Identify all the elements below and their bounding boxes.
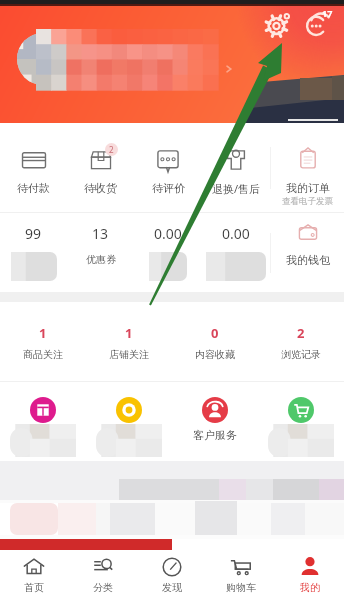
button[interactable]: 我的 [275, 550, 344, 599]
button[interactable]: 0.00 [134, 213, 202, 292]
button[interactable]: 2 [67, 123, 134, 212]
staticText: 13 [92, 224, 109, 243]
staticText: 浏览记录 [281, 348, 321, 361]
button[interactable]: 购物车 [206, 550, 275, 599]
staticText: 待付款 [17, 181, 50, 195]
staticText: 17 [322, 7, 333, 19]
button[interactable]: 0 [172, 302, 258, 381]
button[interactable]: 我的订单 [271, 123, 344, 212]
button[interactable]: 客户服务 [172, 382, 258, 457]
button[interactable] [258, 382, 344, 457]
button[interactable]: 待评价 [134, 123, 202, 212]
staticText: 首页 [24, 581, 44, 594]
staticText: 1 [39, 324, 47, 342]
button[interactable]: 1 [86, 302, 172, 381]
button[interactable]: 我的钱包 [271, 213, 344, 292]
staticText: 0.00 [154, 224, 182, 243]
staticText: 退换/售后 [212, 181, 261, 196]
staticText: 店铺关注 [109, 348, 149, 361]
button[interactable]: 分类 [68, 550, 137, 599]
staticText: 待收货 [84, 181, 117, 195]
button[interactable]: 首页 [0, 550, 68, 599]
button[interactable]: 1 [0, 302, 86, 381]
button[interactable]: 13 [67, 213, 134, 292]
button[interactable]: Settings [265, 11, 291, 37]
staticText: 查看电子发票 [282, 196, 333, 207]
button[interactable] [0, 382, 86, 457]
button[interactable]: 2 [258, 302, 344, 381]
button[interactable]: Messages [305, 11, 331, 37]
staticText: 发现 [162, 581, 182, 594]
staticText: 我的订单 [286, 181, 330, 195]
staticText: 2 [109, 144, 114, 155]
staticText: 我的钱包 [286, 253, 330, 267]
staticText: 0.00 [222, 224, 250, 243]
button[interactable]: 待付款 [0, 123, 67, 212]
staticText: 2 [297, 324, 305, 342]
button[interactable]: 退换/售后 [202, 123, 270, 212]
staticText: 我的 [300, 581, 320, 594]
staticText: 99 [25, 224, 42, 243]
button[interactable]: 发现 [137, 550, 206, 599]
staticText: 1 [125, 324, 133, 342]
button[interactable]: 99 [0, 213, 67, 292]
staticText: 购物车 [226, 581, 256, 594]
staticText: 内容收藏 [195, 348, 235, 361]
button[interactable] [86, 382, 172, 457]
staticText: 分类 [93, 581, 113, 594]
staticText: 优惠券 [86, 253, 116, 266]
staticText: 客户服务 [193, 428, 237, 442]
staticText: 商品关注 [23, 348, 63, 361]
staticText: 0 [211, 324, 219, 342]
button[interactable]: 0.00 [202, 213, 270, 292]
staticText: 待评价 [152, 181, 185, 195]
